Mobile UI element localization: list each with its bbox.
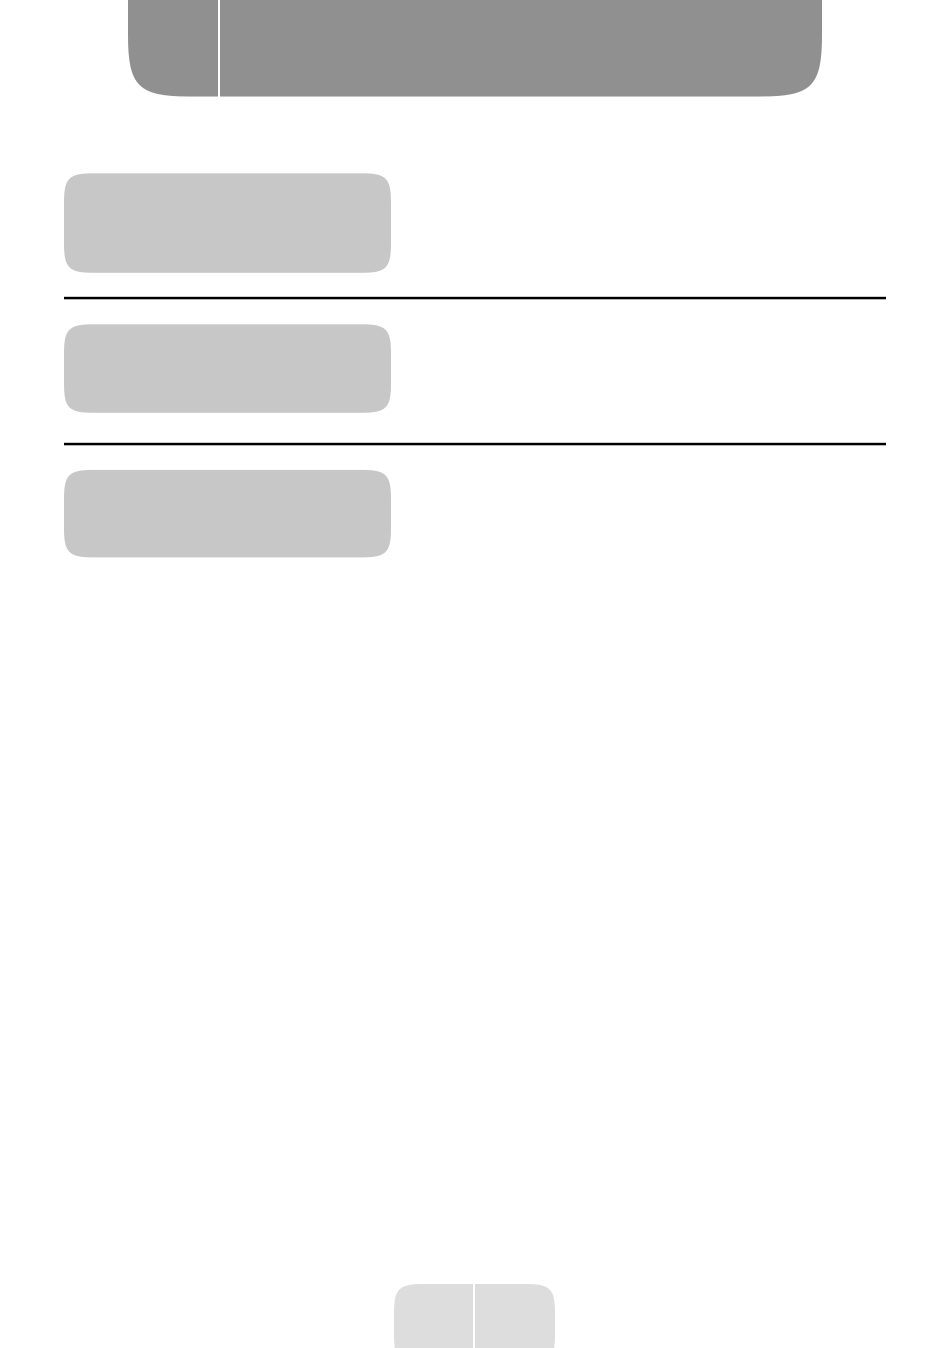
button[interactable]: Featured item <box>128 0 822 96</box>
button[interactable]: Second item <box>64 324 391 413</box>
button[interactable]: First item <box>64 173 391 273</box>
button[interactable]: Second segment <box>475 1284 555 1348</box>
button[interactable]: First segment <box>394 1284 473 1348</box>
button[interactable]: Third item <box>64 470 391 557</box>
